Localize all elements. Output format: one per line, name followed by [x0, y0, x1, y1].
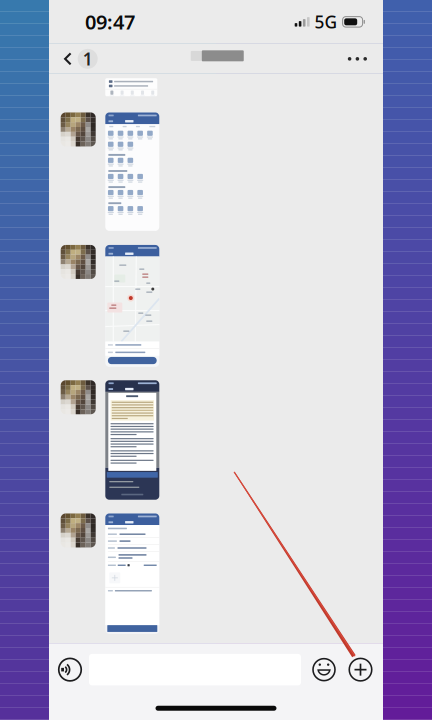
staticText: 09:47 [85, 9, 135, 35]
button[interactable]: Emoji [308, 650, 340, 690]
button[interactable]: More [334, 44, 383, 74]
staticText: 1 [83, 47, 93, 70]
button[interactable]: Voice message [59, 650, 89, 690]
button[interactable]: Back, 1 unread [49, 44, 106, 74]
button[interactable]: More options [343, 650, 378, 690]
staticText: 5G [315, 10, 338, 33]
